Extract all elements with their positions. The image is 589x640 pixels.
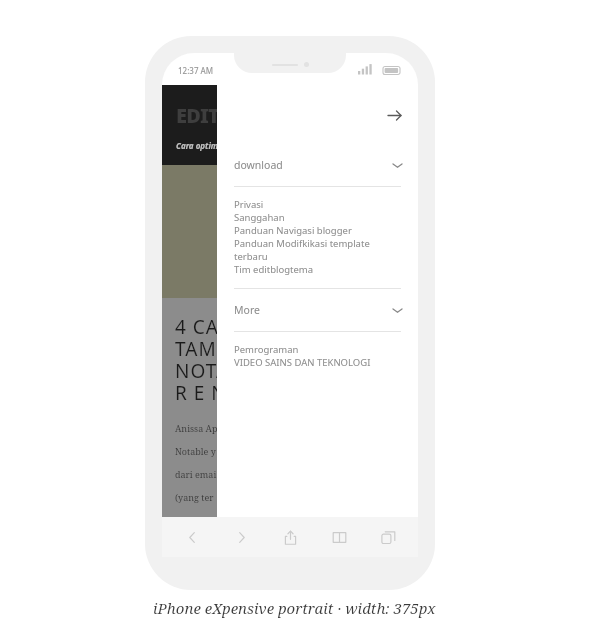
button[interactable]: terbaru — [234, 250, 418, 263]
staticText: Privasi — [234, 198, 264, 211]
staticText: 12:37 AM — [178, 65, 214, 76]
staticText: EDITBLOGTEMA — [176, 102, 325, 129]
button[interactable]: VIDEO SAINS DAN TEKNOLOGI — [234, 356, 418, 369]
button[interactable]: Bookmarks — [319, 520, 359, 554]
button[interactable]: Tim editblogtema — [234, 263, 418, 276]
staticText: Pemrograman — [234, 343, 299, 356]
staticText: dari emai — [175, 468, 217, 480]
button[interactable]: Sanggahan — [234, 211, 418, 224]
staticText: VIDEO SAINS DAN TEKNOLOGI — [234, 356, 371, 369]
button[interactable]: Panduan Modifkikasi template — [234, 237, 418, 250]
staticText: 4 CARA TAMBAH NOTASI R E N D — [175, 314, 259, 406]
staticText: terbaru — [234, 250, 268, 263]
staticText: Anissa Ap — [175, 422, 218, 434]
button[interactable]: Privasi — [234, 198, 418, 211]
button[interactable]: Share — [270, 520, 310, 554]
staticText: Panduan Navigasi blogger — [234, 224, 352, 237]
staticText: Sanggahan — [234, 211, 285, 224]
button[interactable]: Panduan Navigasi blogger — [234, 224, 418, 237]
button[interactable]: Pemrograman — [234, 343, 418, 356]
button[interactable]: Back — [172, 520, 212, 554]
button[interactable]: Forward — [381, 102, 407, 128]
staticText: iPhone eXpensive portrait · width: 375px — [153, 598, 436, 618]
button[interactable]: More — [217, 289, 418, 331]
button[interactable]: download — [217, 144, 418, 186]
staticText: Cara optimasi blog — [176, 140, 248, 151]
staticText: Notable y — [175, 445, 216, 457]
staticText: (yang ter — [175, 491, 214, 503]
button[interactable]: Tabs — [368, 520, 408, 554]
staticText: More — [234, 303, 260, 317]
staticText: download — [234, 158, 283, 172]
button[interactable]: Forward — [221, 520, 261, 554]
staticText: Panduan Modifkikasi template — [234, 237, 370, 250]
staticText: Tim editblogtema — [234, 263, 314, 276]
